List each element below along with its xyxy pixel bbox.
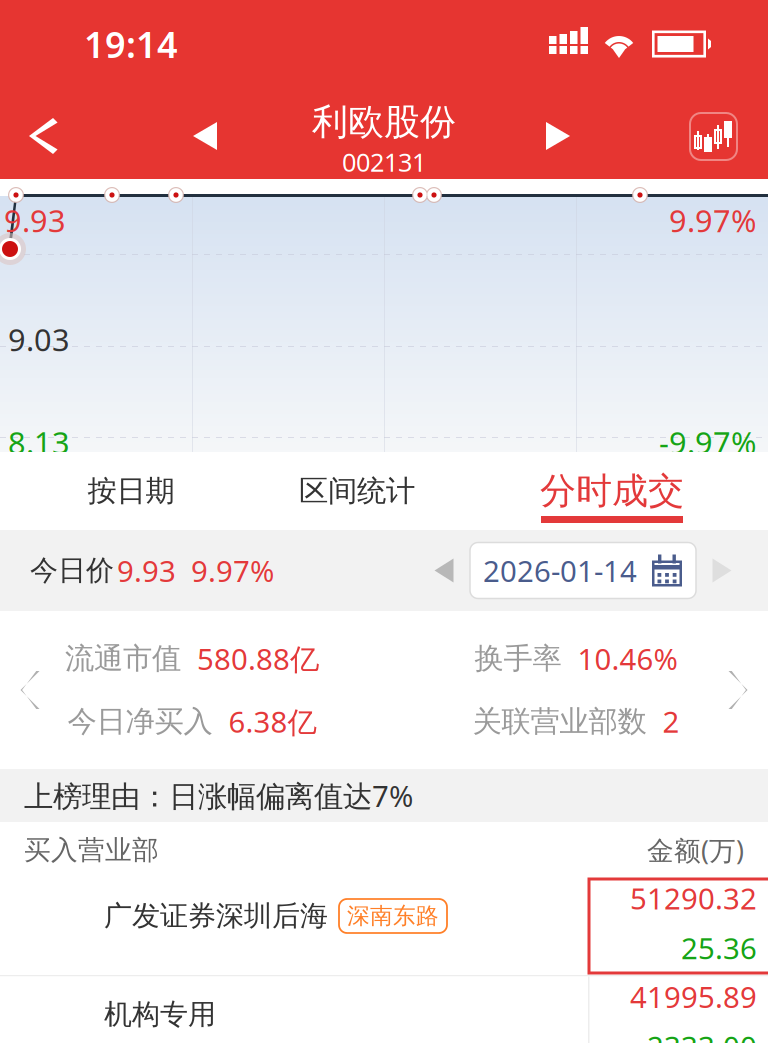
- staticText: 分时成交: [540, 469, 684, 513]
- staticText: -9.97%: [659, 422, 756, 463]
- staticText: 2333.00: [647, 1027, 757, 1043]
- staticText: 按日期: [87, 473, 174, 509]
- staticText: 换手率: [474, 640, 561, 676]
- staticText: 9.93: [4, 200, 66, 241]
- button[interactable]: 区间统计: [247, 452, 467, 530]
- staticText: 利欧股份: [312, 100, 456, 144]
- staticText: 580.88亿: [197, 639, 319, 678]
- staticText: 002131: [342, 145, 426, 179]
- staticText: 51290.32: [630, 878, 757, 917]
- staticText: 9.97%: [191, 551, 274, 590]
- button[interactable]: Previous day: [418, 541, 470, 599]
- staticText: 8.13: [8, 422, 70, 463]
- staticText: 今日价: [30, 553, 114, 588]
- button[interactable]: Previous stock: [173, 101, 237, 171]
- staticText: 关联营业部数: [472, 703, 646, 739]
- staticText: 今日净买入: [67, 703, 212, 739]
- staticText: 广发证券深圳后海: [104, 899, 328, 933]
- staticText: 深南东路: [347, 902, 439, 930]
- button[interactable]: Next stock: [526, 101, 590, 171]
- staticText: 上榜理由：日涨幅偏离值达7%: [24, 776, 413, 815]
- staticText: 9.93: [117, 551, 176, 590]
- staticText: 区间统计: [299, 473, 415, 509]
- staticText: 金额(万): [647, 832, 744, 868]
- staticText: 6.38亿: [228, 702, 316, 741]
- button[interactable]: Next day: [696, 541, 748, 599]
- staticText: 10.46%: [577, 639, 677, 678]
- button[interactable]: Previous page: [8, 658, 52, 722]
- staticText: 2: [662, 702, 679, 741]
- staticText: 25.36: [681, 928, 757, 967]
- button[interactable]: 广发证券深圳后海: [0, 878, 768, 975]
- staticText: 9.03: [8, 319, 70, 360]
- button[interactable]: 按日期: [31, 452, 231, 530]
- staticText: 买入营业部: [24, 834, 159, 866]
- button[interactable]: 2026-01-14: [470, 542, 696, 598]
- staticText: 2026-01-14: [483, 551, 637, 590]
- button[interactable]: Back: [8, 101, 78, 171]
- staticText: 41995.89: [630, 977, 757, 1016]
- staticText: 9.97%: [669, 200, 756, 241]
- staticText: 19:14: [84, 20, 178, 68]
- staticText: 流通市值: [65, 640, 181, 676]
- button[interactable]: K-line chart: [690, 113, 737, 160]
- button[interactable]: Next page: [716, 658, 760, 722]
- staticText: 机构专用: [104, 997, 216, 1032]
- button[interactable]: 机构专用: [0, 976, 768, 1043]
- button[interactable]: 分时成交: [502, 452, 722, 530]
